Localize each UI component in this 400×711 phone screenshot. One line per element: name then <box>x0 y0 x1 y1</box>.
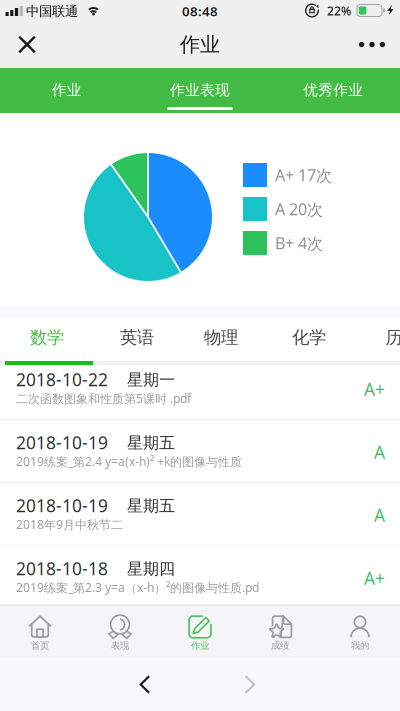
button[interactable]: 数学 <box>10 318 84 357</box>
button[interactable]: 作业 <box>0 68 133 113</box>
staticText: 作业 <box>52 81 82 99</box>
staticText: 2019练案_第2.3 y=a（x-h）²的图像与性质.pd <box>16 579 259 595</box>
button[interactable]: 成绩 <box>240 605 320 658</box>
staticText: 作业 <box>191 640 209 651</box>
staticText: 化学 <box>292 327 326 348</box>
staticText: 2018-10-18 <box>16 557 108 580</box>
staticText: A <box>374 503 385 526</box>
staticText: 星期五 <box>127 433 175 453</box>
button[interactable]: 前进 <box>215 658 285 711</box>
staticText: 中国联通 <box>26 3 78 19</box>
staticText: 2018-10-19 <box>16 431 108 454</box>
staticText: 2018-10-19 <box>16 494 108 517</box>
button[interactable]: 更多 <box>344 21 400 68</box>
staticText: 2019练案_第2.4 y=a(x-h)² +k的图像与性质 <box>16 453 242 469</box>
staticText: 作业表现 <box>170 81 230 99</box>
staticText: 作业 <box>180 32 220 57</box>
staticText: 数学 <box>30 327 64 348</box>
staticText: A <box>374 440 385 463</box>
staticText: 星期五 <box>127 496 175 516</box>
button[interactable]: 2018-10-22 <box>0 357 400 420</box>
staticText: 首页 <box>31 640 49 651</box>
button[interactable]: 作业 <box>160 605 240 658</box>
staticText: B+ 4次 <box>275 232 323 254</box>
button[interactable]: 我的 <box>320 605 400 658</box>
staticText: 星期四 <box>127 559 175 579</box>
button[interactable]: 关闭 <box>0 21 54 68</box>
staticText: 成绩 <box>271 640 289 651</box>
button[interactable]: 作业表现 <box>133 68 267 113</box>
button[interactable]: 2018-10-19 <box>0 420 400 483</box>
staticText: 英语 <box>120 327 154 348</box>
staticText: 08:48 <box>182 2 218 20</box>
staticText: 物理 <box>204 327 238 348</box>
staticText: A+ <box>364 566 385 589</box>
staticText: 优秀作业 <box>303 81 363 99</box>
button[interactable]: 2018-10-18 <box>0 546 400 605</box>
button[interactable]: 英语 <box>100 318 174 357</box>
button[interactable]: 2018-10-19 <box>0 483 400 546</box>
staticText: 星期一 <box>127 370 175 390</box>
staticText: 2018年9月中秋节二 <box>16 516 123 532</box>
button[interactable]: 后退 <box>110 658 180 711</box>
staticText: 22% <box>327 3 351 19</box>
staticText: 我的 <box>351 640 369 651</box>
button[interactable]: 化学 <box>272 318 346 357</box>
button[interactable]: 优秀作业 <box>267 68 400 113</box>
button[interactable]: 首页 <box>0 605 80 658</box>
staticText: 2018-10-22 <box>16 368 108 391</box>
staticText: A+ 17次 <box>275 164 332 186</box>
button[interactable]: 物理 <box>184 318 258 357</box>
staticText: 表现 <box>111 640 129 651</box>
staticText: 二次函数图象和性质第5课时 .pdf <box>16 390 191 406</box>
button[interactable]: 历 <box>357 318 400 357</box>
button[interactable]: 表现 <box>80 605 160 658</box>
staticText: A 20次 <box>275 198 323 220</box>
staticText: 历 <box>385 327 400 348</box>
staticText: A+ <box>364 377 385 400</box>
